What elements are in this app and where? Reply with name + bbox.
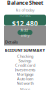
button[interactable]: Savings [1, 58, 49, 63]
staticText: As of today [15, 7, 34, 13]
button[interactable]: Mortgage [1, 72, 49, 76]
button[interactable]: Credit card [1, 63, 49, 67]
staticText: Auto loan [17, 76, 33, 81]
button[interactable]: Net worth [1, 81, 49, 85]
staticText: Mortgage [16, 71, 33, 77]
staticText: Credit card [15, 62, 35, 68]
staticText: Net worth [16, 80, 33, 86]
staticText: Investments [14, 67, 35, 72]
staticText: More [20, 86, 30, 90]
button[interactable]: Add entry [17, 30, 32, 35]
staticText: Add entry [20, 27, 29, 38]
staticText: Savings [18, 58, 31, 63]
staticText: ACCOUNT SUMMARY [4, 48, 45, 53]
button[interactable]: Investments [1, 67, 49, 72]
staticText: Balance Sheet [7, 0, 43, 6]
staticText: TOTAL [19, 13, 31, 18]
staticText: $12,480 [12, 19, 38, 28]
staticText: Details [5, 39, 18, 45]
button[interactable]: Auto loan [1, 76, 49, 81]
button[interactable]: Checking [1, 54, 49, 58]
staticText: Checking [17, 53, 33, 59]
